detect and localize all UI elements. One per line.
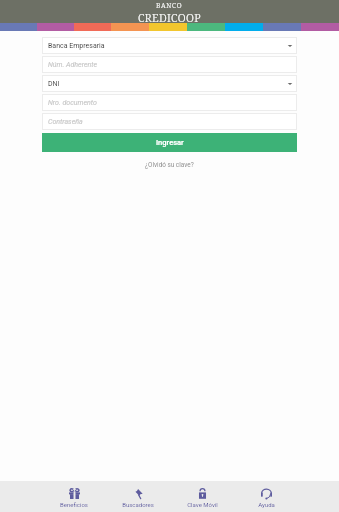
staticText: Beneficios	[60, 501, 88, 508]
button[interactable]: Núm. Adherente	[42, 56, 297, 73]
staticText: Buscadores	[122, 501, 154, 508]
staticText: CREDICOOP	[138, 10, 201, 24]
button[interactable]: DNI	[42, 75, 297, 92]
staticText: ¿Olvidó su clave?	[145, 161, 194, 169]
staticText: Clave Móvil	[187, 501, 218, 508]
staticText: DNI	[48, 80, 60, 88]
button[interactable]: Beneficios	[42, 481, 106, 512]
staticText: Banca Empresaria	[48, 42, 105, 50]
staticText: Nro. documento	[48, 99, 97, 107]
staticText: Ingresar	[156, 138, 184, 147]
staticText: Ayuda	[258, 501, 275, 508]
button[interactable]: Contraseña	[42, 113, 297, 130]
button[interactable]: Nro. documento	[42, 94, 297, 111]
button[interactable]: Banca Empresaria	[42, 37, 297, 54]
button[interactable]: Buscadores	[106, 481, 170, 512]
staticText: Núm. Adherente	[48, 61, 98, 69]
other: Desplegar	[284, 78, 296, 90]
button[interactable]: Clave Móvil	[170, 481, 234, 512]
staticText: BANCO	[156, 1, 183, 10]
button[interactable]: ¿Olvidó su clave?	[142, 160, 197, 170]
staticText: Contraseña	[48, 118, 83, 126]
button[interactable]: Ingresar	[42, 133, 297, 152]
button[interactable]: Ayuda	[234, 481, 298, 512]
other: Desplegar	[284, 40, 296, 52]
